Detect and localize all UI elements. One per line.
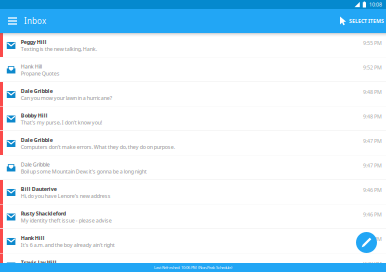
button[interactable]: Dale Gribble — [0, 82, 386, 106]
staticText: 9:52 PM — [363, 64, 382, 71]
staticText: Rusty Shackleford — [21, 210, 66, 217]
staticText: Travis Jay Hill — [21, 259, 57, 266]
button[interactable]: Menu — [8, 17, 17, 25]
staticText: Can you mow your lawn in a hurricane? — [21, 94, 112, 102]
staticText: 9:55 PM — [363, 39, 382, 47]
button[interactable]: Hank Hill — [0, 229, 386, 253]
button[interactable]: Peggy Hill — [0, 33, 386, 57]
staticText: That's my purse, I don't know you! — [21, 119, 102, 126]
button[interactable]: SELECT ITEMS — [339, 16, 384, 25]
staticText: 9:47 PM — [363, 162, 382, 169]
staticText: 9:48 PM — [363, 88, 382, 96]
staticText: 9:46 PM — [363, 211, 382, 218]
staticText: 10:08 — [369, 1, 382, 8]
staticText: Peggy Hill — [21, 38, 47, 45]
button[interactable]: Rusty Shackleford — [0, 204, 386, 228]
button[interactable]: Travis Jay Hill — [0, 253, 386, 272]
button[interactable]: Dale Gribble — [0, 155, 386, 179]
staticText: Bill Dauterive — [21, 185, 57, 192]
staticText: 9:48 PM — [363, 113, 382, 120]
staticText: My identity theft issue - please advise — [21, 217, 112, 224]
staticText: Propane Quotes — [21, 70, 60, 77]
staticText: Inbox — [24, 16, 46, 26]
staticText: SELECT ITEMS — [349, 17, 384, 25]
button[interactable]: Bobby Hill — [0, 106, 386, 130]
button[interactable]: Bill Dauterive — [0, 180, 386, 204]
staticText: 9:45 PM — [363, 235, 382, 243]
staticText: 9:46 PM — [363, 186, 382, 194]
button[interactable]: Compose — [356, 232, 377, 253]
staticText: Hi, do you have Lenore's new address — [21, 192, 111, 200]
staticText: Dale Gribble — [21, 161, 50, 168]
staticText: It's 6 a.m. and the boy already ain't ri… — [21, 241, 115, 249]
staticText: Bobby Hill — [21, 112, 48, 119]
staticText: Hank Hill — [21, 63, 42, 70]
staticText: Hank Hill — [21, 234, 45, 241]
button[interactable]: Hank Hill — [0, 57, 386, 81]
staticText: 9:39 PM — [363, 260, 382, 267]
staticText: Texting is the new talking, Hank. — [21, 45, 97, 53]
staticText: Dale Gribble — [21, 87, 53, 94]
staticText: Boil up some Mountain Dew; it's gonna be… — [21, 168, 147, 175]
staticText: Computers don't make errors. What they d… — [21, 143, 175, 151]
staticText: Dale Gribble — [21, 136, 53, 143]
staticText: Last Refreshed: 10:06 PM (Non-Peak Sched… — [154, 265, 232, 270]
button[interactable]: Dale Gribble — [0, 131, 386, 155]
staticText: 9:47 PM — [363, 137, 382, 145]
